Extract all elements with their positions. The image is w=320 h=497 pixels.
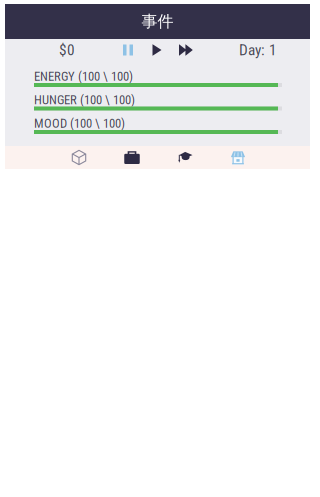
staticText: MOOD (100 \ 100) [34,116,125,131]
staticText: $0 [59,41,75,59]
staticText: ENERGY (100 \ 100) [34,69,133,84]
button[interactable]: Inventory [61,146,97,169]
button[interactable]: Shop [220,146,256,169]
staticText: 事件 [141,12,173,31]
button[interactable]: Fast forward [175,42,197,58]
staticText: Day: 1 [239,41,277,59]
button[interactable]: Play [146,42,168,58]
button[interactable]: Pause [117,42,139,58]
button[interactable]: Work [114,146,150,169]
button[interactable]: Study [167,146,203,169]
staticText: HUNGER (100 \ 100) [34,93,135,107]
